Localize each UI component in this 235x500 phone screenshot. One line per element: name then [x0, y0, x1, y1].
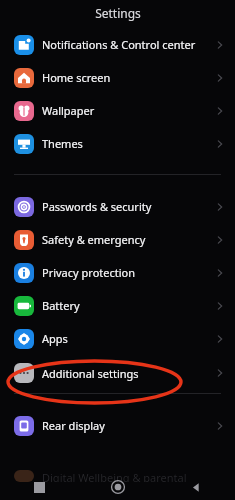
button[interactable]: Wallpaper: [0, 94, 235, 127]
button[interactable]: Digital Wellbeing & parental: [0, 462, 235, 474]
button[interactable]: Home screen: [0, 61, 235, 94]
button[interactable]: Safety & emergency: [0, 223, 235, 256]
staticText: Home screen: [42, 70, 111, 85]
button[interactable]: Additional settings: [0, 355, 235, 391]
staticText: Rear display: [42, 418, 105, 433]
staticText: Battery: [42, 298, 80, 313]
staticText: Apps: [42, 331, 68, 346]
button[interactable]: Rear display: [0, 409, 235, 442]
staticText: Digital Wellbeing & parental: [42, 470, 187, 482]
button[interactable]: Apps: [0, 322, 235, 355]
staticText: Privacy protection: [42, 265, 136, 280]
button[interactable]: Themes: [0, 127, 235, 160]
staticText: Additional settings: [42, 366, 139, 381]
staticText: Passwords & security: [42, 199, 152, 214]
button[interactable]: Notifications & Control center: [0, 28, 235, 61]
button[interactable]: Battery: [0, 289, 235, 322]
staticText: Themes: [42, 136, 83, 151]
button[interactable]: Privacy protection: [0, 256, 235, 289]
button[interactable]: Back: [157, 474, 235, 500]
staticText: Wallpaper: [42, 103, 95, 118]
staticText: Safety & emergency: [42, 232, 146, 247]
staticText: Notifications & Control center: [42, 37, 196, 52]
staticText: Settings: [95, 5, 141, 21]
button[interactable]: Recent apps: [0, 474, 79, 500]
button[interactable]: Home: [79, 474, 157, 500]
button[interactable]: Passwords & security: [0, 190, 235, 223]
